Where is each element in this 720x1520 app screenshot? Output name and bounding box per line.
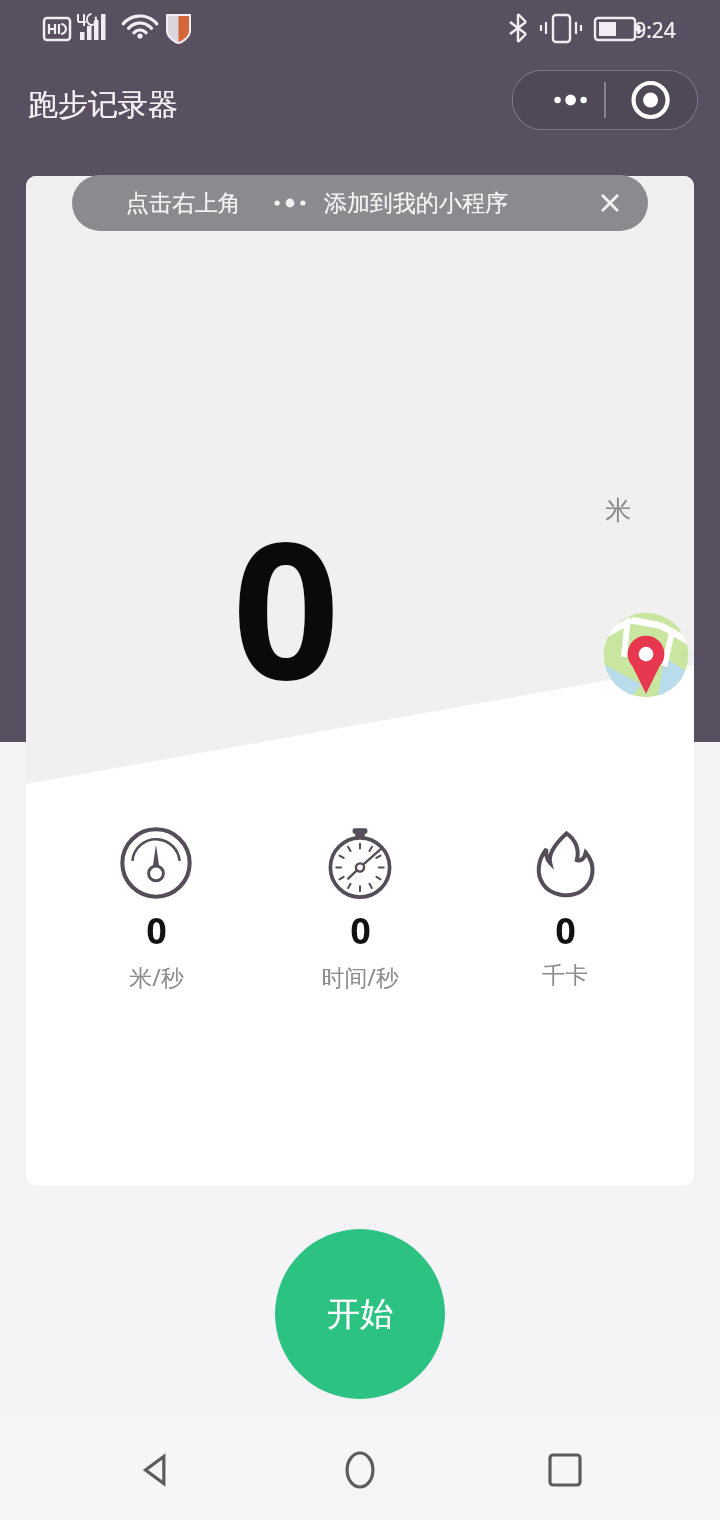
staticText: 跑步记录器 <box>28 86 178 124</box>
button[interactable]: More <box>512 70 605 130</box>
button[interactable]: 0 <box>81 826 231 980</box>
staticText: 时间/秒 <box>321 961 399 992</box>
button[interactable]: Close <box>605 70 698 130</box>
staticText: 开始 <box>327 1293 393 1335</box>
button[interactable]: 地图 <box>600 609 692 701</box>
staticText: 点击右上角 <box>126 189 241 218</box>
staticText: 9:24 <box>634 16 676 45</box>
button[interactable]: 点击右上角 <box>72 175 648 231</box>
button[interactable]: 开始 <box>275 1229 445 1399</box>
staticText: 0 <box>146 906 167 955</box>
staticText: 0 <box>232 478 340 734</box>
staticText: 米/秒 <box>129 961 184 992</box>
staticText: 0 <box>350 906 371 955</box>
button[interactable]: Back <box>105 1420 205 1520</box>
button[interactable]: Home <box>310 1420 410 1520</box>
staticText: 千卡 <box>542 961 588 990</box>
button[interactable]: 0 <box>490 826 640 978</box>
staticText: 添加到我的小程序 <box>324 189 508 218</box>
staticText: 0 <box>555 906 576 955</box>
button[interactable]: 0 <box>285 826 435 980</box>
staticText: 米 <box>605 494 631 527</box>
button[interactable]: Recents <box>515 1420 615 1520</box>
button[interactable]: 关闭 <box>572 175 648 231</box>
